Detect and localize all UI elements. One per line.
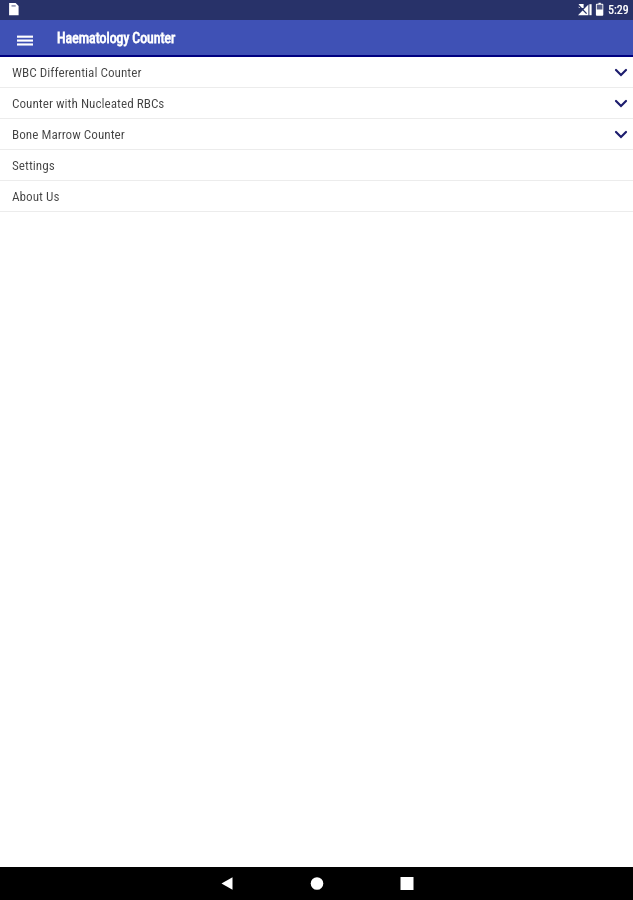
button[interactable]: About Us bbox=[0, 181, 633, 212]
staticText: Settings bbox=[12, 158, 633, 173]
staticText: Haematology Counter bbox=[57, 30, 176, 46]
button[interactable]: Settings bbox=[0, 150, 633, 181]
button[interactable]: Home bbox=[300, 867, 334, 900]
button[interactable]: Open navigation menu bbox=[9, 22, 41, 54]
button[interactable]: Counter with Nucleated RBCs bbox=[0, 88, 633, 119]
button[interactable]: Bone Marrow Counter bbox=[0, 119, 633, 150]
staticText: Bone Marrow Counter bbox=[12, 127, 615, 142]
staticText: 5:29 bbox=[608, 3, 629, 17]
button[interactable]: WBC Differential Counter bbox=[0, 57, 633, 88]
staticText: About Us bbox=[12, 189, 633, 204]
staticText: Counter with Nucleated RBCs bbox=[12, 96, 615, 111]
button[interactable]: Back bbox=[210, 867, 244, 900]
button[interactable]: Recent apps bbox=[390, 867, 424, 900]
staticText: WBC Differential Counter bbox=[12, 65, 615, 80]
